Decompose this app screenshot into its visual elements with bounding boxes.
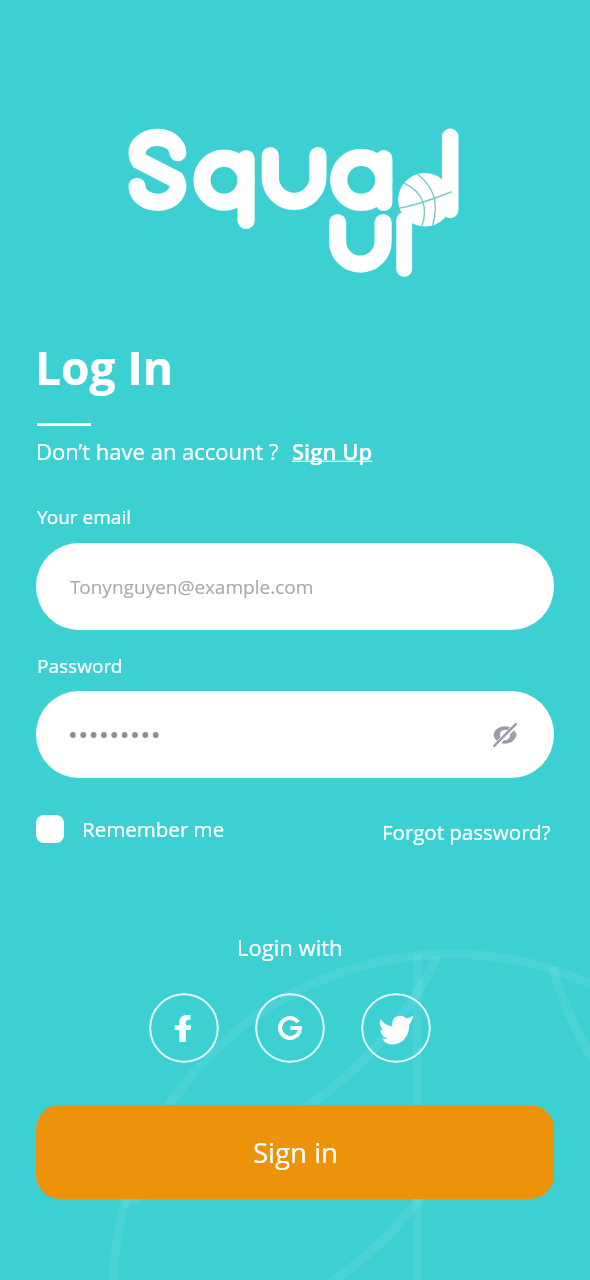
button[interactable]: Forgot password? (382, 818, 551, 846)
button[interactable]: Sign in with Twitter (361, 993, 431, 1063)
button[interactable]: Sign in with Google (255, 993, 325, 1063)
button[interactable]: Sign in (36, 1105, 554, 1199)
staticText: Login with (237, 932, 343, 962)
staticText: Forgot password? (382, 818, 551, 846)
button[interactable]: Tonynguyen@example.com (36, 543, 554, 630)
button[interactable]: Remember me (36, 815, 225, 843)
button[interactable]: Sign in with Facebook (149, 993, 219, 1063)
staticText: Log In (35, 336, 173, 399)
staticText: Don’t have an account ? (36, 436, 279, 466)
staticText: Tonynguyen@example.com (70, 574, 314, 600)
staticText: Your email (37, 504, 132, 530)
button[interactable]: Show password (36, 691, 554, 778)
staticText: Sign in (253, 1134, 338, 1171)
staticText: Password (37, 653, 123, 679)
button[interactable]: Sign Up (292, 436, 373, 466)
staticText: Sign Up (292, 436, 373, 466)
button[interactable]: Show password (488, 718, 522, 752)
staticText: Remember me (82, 815, 225, 843)
